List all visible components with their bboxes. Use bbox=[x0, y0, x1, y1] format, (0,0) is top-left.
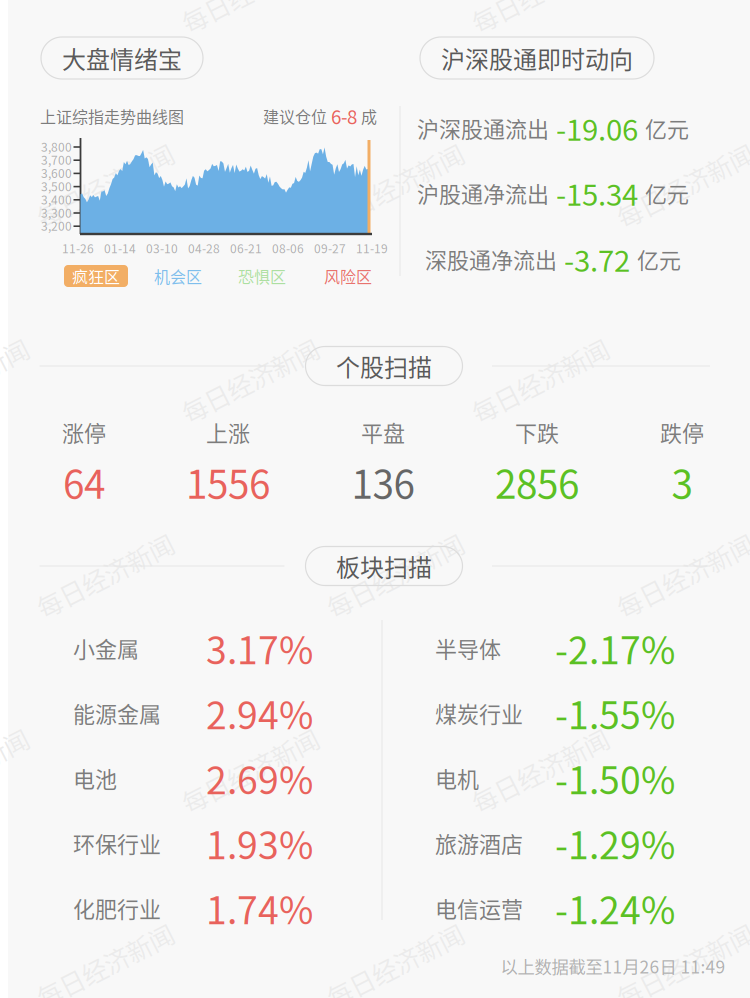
staticText: 每日经济新闻 bbox=[175, 0, 325, 8]
staticText: 3,700 bbox=[41, 151, 72, 168]
staticText: 上涨 bbox=[206, 416, 250, 448]
staticText: 2.94% bbox=[206, 686, 313, 740]
staticText: -19.06 bbox=[549, 107, 645, 149]
staticText: 3 bbox=[671, 454, 692, 510]
staticText: 每日经济新闻 bbox=[320, 167, 470, 203]
staticText: 每日经济新闻 bbox=[610, 947, 750, 983]
staticText: 以上数据截至11月26日 11:49 bbox=[500, 953, 725, 979]
button[interactable]: 板块扫描 bbox=[305, 546, 462, 585]
staticText: 08-06 bbox=[272, 239, 304, 257]
staticText: 建议仓位 bbox=[263, 104, 331, 128]
staticText: 6-8 bbox=[331, 102, 357, 129]
staticText: 深股通净流出 bbox=[425, 243, 557, 275]
staticText: -15.34 bbox=[549, 172, 645, 214]
staticText: 3.17% bbox=[206, 621, 313, 675]
staticText: 下跌 bbox=[515, 416, 559, 448]
staticText: 亿元 bbox=[645, 177, 689, 209]
button[interactable]: 半导体 bbox=[435, 615, 675, 680]
staticText: -1.24% bbox=[555, 881, 675, 935]
staticText: -1.55% bbox=[555, 686, 675, 740]
button[interactable]: 电信运营 bbox=[435, 875, 675, 940]
button[interactable]: 恐惧区 bbox=[230, 265, 294, 287]
staticText: 06-21 bbox=[230, 239, 262, 257]
staticText: 涨停 bbox=[62, 416, 106, 448]
staticText: 1.74% bbox=[206, 881, 313, 935]
staticText: 每日经济新闻 bbox=[465, 0, 615, 8]
staticText: 小金属 bbox=[73, 632, 139, 664]
button[interactable]: 上涨 bbox=[158, 420, 298, 506]
staticText: 3,400 bbox=[41, 190, 72, 208]
button[interactable]: 化肥行业 bbox=[73, 875, 313, 940]
button[interactable]: 个股扫描 bbox=[305, 346, 462, 385]
button[interactable]: 下跌 bbox=[467, 420, 607, 506]
staticText: 11-26 bbox=[62, 239, 94, 257]
staticText: 2856 bbox=[495, 454, 579, 510]
staticText: 04-28 bbox=[188, 239, 220, 257]
staticText: 每日经济新闻 bbox=[320, 557, 470, 593]
button[interactable]: 沪深股通即时动向 bbox=[420, 37, 654, 79]
button[interactable]: 平盘 bbox=[313, 420, 453, 506]
button[interactable]: 旅游酒店 bbox=[435, 810, 675, 875]
button[interactable]: 涨停 bbox=[14, 420, 154, 506]
staticText: 电机 bbox=[435, 762, 479, 794]
staticText: 03-10 bbox=[146, 239, 178, 257]
staticText: 沪股通净流出 bbox=[417, 177, 549, 209]
staticText: 每日经济新闻 bbox=[610, 557, 750, 593]
staticText: 上证综指走势曲线图 bbox=[40, 104, 184, 128]
staticText: 64 bbox=[63, 454, 105, 510]
button[interactable]: 大盘情绪宝 bbox=[41, 37, 203, 79]
staticText: 半导体 bbox=[435, 632, 501, 664]
staticText: 09-27 bbox=[314, 239, 346, 257]
staticText: -1.50% bbox=[555, 751, 675, 805]
staticText: 每日经济新闻 bbox=[0, 362, 35, 398]
staticText: 每日经济新闻 bbox=[30, 947, 180, 983]
staticText: -1.29% bbox=[555, 816, 675, 870]
button[interactable]: 能源金属 bbox=[73, 680, 313, 745]
staticText: 每日经济新闻 bbox=[0, 752, 35, 788]
staticText: 平盘 bbox=[361, 416, 405, 448]
staticText: 每日经济新闻 bbox=[175, 752, 325, 788]
staticText: 每日经济新闻 bbox=[320, 947, 470, 983]
staticText: 3,800 bbox=[41, 138, 72, 155]
button[interactable]: 风险区 bbox=[316, 265, 380, 287]
staticText: 煤炭行业 bbox=[435, 697, 523, 729]
button[interactable]: 小金属 bbox=[73, 615, 313, 680]
staticText: 板块扫描 bbox=[336, 549, 432, 583]
button[interactable]: 疯狂区 bbox=[64, 265, 128, 287]
button[interactable]: 煤炭行业 bbox=[435, 680, 675, 745]
staticText: 机会区 bbox=[154, 264, 202, 288]
staticText: 每日经济新闻 bbox=[30, 557, 180, 593]
staticText: 3,300 bbox=[41, 204, 72, 221]
staticText: 3,200 bbox=[41, 217, 72, 234]
staticText: 跌停 bbox=[660, 416, 704, 448]
button[interactable]: 电池 bbox=[73, 745, 313, 810]
staticText: 化肥行业 bbox=[73, 892, 161, 924]
staticText: 136 bbox=[351, 454, 414, 510]
button[interactable]: 环保行业 bbox=[73, 810, 313, 875]
staticText: 亿元 bbox=[645, 112, 689, 144]
staticText: 1.93% bbox=[206, 816, 313, 870]
staticText: 每日经济新闻 bbox=[610, 167, 750, 203]
staticText: 11-19 bbox=[356, 239, 388, 257]
staticText: 沪深股通即时动向 bbox=[441, 41, 633, 75]
staticText: 风险区 bbox=[324, 264, 372, 288]
staticText: 沪深股通流出 bbox=[417, 112, 549, 144]
staticText: 疯狂区 bbox=[72, 264, 120, 288]
staticText: -2.17% bbox=[555, 621, 675, 675]
staticText: 每日经济新闻 bbox=[175, 362, 325, 398]
staticText: 1556 bbox=[186, 454, 270, 510]
staticText: 大盘情绪宝 bbox=[62, 41, 182, 75]
staticText: 个股扫描 bbox=[336, 349, 432, 383]
staticText: 3,500 bbox=[41, 177, 72, 195]
staticText: 恐惧区 bbox=[238, 264, 286, 288]
staticText: 01-14 bbox=[104, 239, 136, 257]
button[interactable]: 跌停 bbox=[612, 420, 750, 506]
staticText: 电信运营 bbox=[435, 892, 523, 924]
staticText: 每日经济新闻 bbox=[465, 362, 615, 398]
staticText: 能源金属 bbox=[73, 697, 161, 729]
button[interactable]: 机会区 bbox=[146, 265, 210, 287]
button[interactable]: 电机 bbox=[435, 745, 675, 810]
staticText: 每日经济新闻 bbox=[30, 167, 180, 203]
staticText: 环保行业 bbox=[73, 827, 161, 859]
